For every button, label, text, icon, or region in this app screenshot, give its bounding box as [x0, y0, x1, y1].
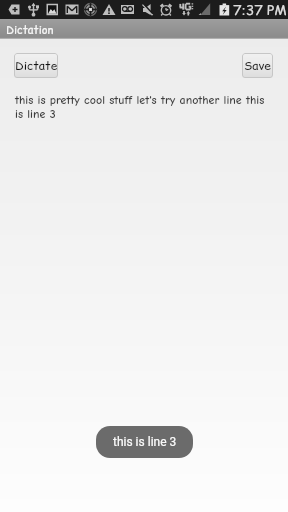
- staticText: this is line 3: [113, 435, 177, 449]
- button[interactable]: Save: [242, 53, 273, 78]
- staticText: Dictate: [15, 57, 58, 74]
- button[interactable]: this is line 3: [96, 426, 193, 458]
- staticText: 7:37 PM: [233, 0, 287, 19]
- button[interactable]: Dictate: [14, 53, 58, 78]
- staticText: Save: [244, 57, 271, 74]
- staticText: Dictation: [6, 22, 54, 37]
- staticText: this is pretty cool stuff let's try anot…: [15, 93, 273, 121]
